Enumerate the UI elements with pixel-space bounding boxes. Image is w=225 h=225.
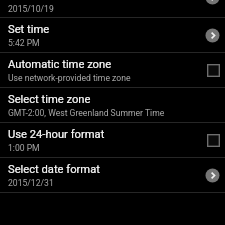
staticText: 2015/12/31 bbox=[8, 178, 54, 188]
staticText: Automatic time zone bbox=[8, 58, 112, 71]
button[interactable]: Previous setting bbox=[0, 0, 225, 17]
other: Toggle bbox=[207, 134, 220, 147]
staticText: 1:00 PM bbox=[8, 143, 40, 153]
staticText: Select time zone bbox=[8, 93, 91, 106]
staticText: Use network-provided time zone bbox=[8, 73, 131, 83]
staticText: Select date format bbox=[8, 163, 100, 176]
staticText: GMT-2:00, West Greenland Summer Time bbox=[8, 108, 165, 118]
button[interactable]: Use 24-hour format bbox=[0, 123, 225, 157]
button[interactable]: Set time bbox=[0, 18, 225, 52]
button[interactable]: Automatic time zone bbox=[0, 53, 225, 87]
other: Open bbox=[205, 28, 220, 43]
staticText: 5:42 PM bbox=[8, 38, 40, 48]
other: Open bbox=[205, 0, 220, 5]
staticText: Use 24-hour format bbox=[8, 128, 105, 141]
staticText: 2015/10/19 bbox=[8, 4, 54, 14]
staticText: Set time bbox=[8, 23, 50, 36]
button[interactable]: Select time zone bbox=[0, 88, 225, 122]
other: Toggle bbox=[207, 64, 220, 77]
other: Open bbox=[205, 168, 220, 183]
button[interactable]: Select date format bbox=[0, 158, 225, 192]
